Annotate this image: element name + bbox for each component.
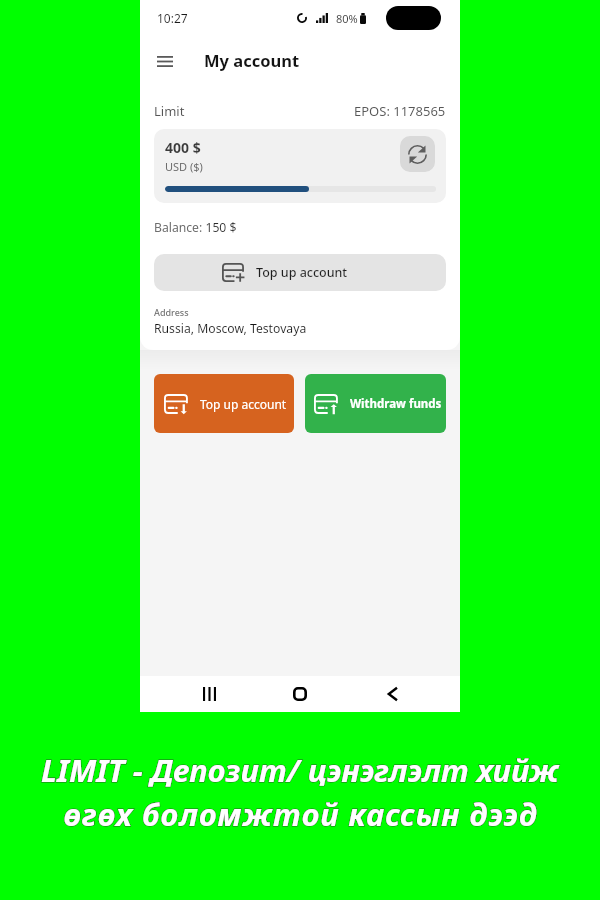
staticText: Limit <box>154 102 185 120</box>
staticText: 80% <box>336 11 358 26</box>
staticText: USD ($) <box>165 159 203 174</box>
button[interactable]: Top up account <box>154 254 446 291</box>
staticText: Top up account <box>256 264 348 281</box>
staticText: LIMIT - Депозит/ цэнэглэлт хийж <box>41 749 559 791</box>
button[interactable]: Refresh <box>400 136 435 172</box>
button[interactable]: Back <box>370 676 414 712</box>
staticText: Top up account <box>200 396 287 412</box>
staticText: өгөх боломжтой кассын дээд <box>63 793 538 835</box>
staticText: Balance: 150 $ <box>154 219 237 236</box>
staticText: 400 $ <box>165 138 201 157</box>
button[interactable]: Withdraw funds <box>305 374 446 433</box>
staticText: Withdraw funds <box>350 396 442 412</box>
button[interactable]: Menu <box>145 41 185 81</box>
staticText: LIMIT - Депозит/ цэнэглэлт хийж <box>41 749 559 791</box>
button[interactable]: Recents <box>187 676 231 712</box>
staticText: Russia, Moscow, Testovaya <box>154 320 307 337</box>
staticText: өгөх боломжтой кассын дээд <box>63 793 538 835</box>
staticText: Address <box>154 306 189 318</box>
button[interactable]: Home <box>278 676 322 712</box>
staticText: EPOS: 1178565 <box>354 102 446 120</box>
staticText: 10:27 <box>157 10 188 26</box>
button[interactable]: Top up account <box>154 374 294 433</box>
staticText: My account <box>204 49 300 71</box>
